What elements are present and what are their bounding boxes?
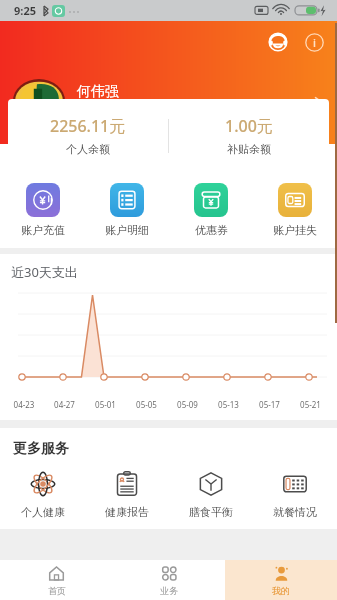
button[interactable]: 优惠券: [169, 183, 253, 237]
staticText: 17855831296: [77, 104, 153, 120]
staticText: 05-01: [85, 399, 126, 410]
button[interactable]: 客服: [265, 29, 291, 55]
staticText: 个人健康: [21, 505, 65, 519]
staticText: 05-09: [167, 399, 208, 410]
button[interactable]: 业务: [113, 560, 225, 600]
button[interactable]: 账户挂失: [253, 183, 337, 237]
button[interactable]: 账户明细: [85, 183, 169, 237]
staticText: 健康报告: [105, 505, 149, 519]
button[interactable]: 首页: [0, 560, 113, 600]
staticText: 我的: [272, 585, 290, 596]
staticText: 1.00元: [225, 115, 273, 137]
button[interactable]: 账户充值: [0, 183, 85, 237]
staticText: 个人余额: [66, 142, 110, 156]
staticText: 05-17: [249, 399, 290, 410]
staticText: 更多服务: [13, 440, 69, 458]
staticText: 2256.11元: [50, 115, 126, 137]
button[interactable]: 就餐情况: [253, 470, 337, 519]
staticText: 05-21: [290, 399, 331, 410]
staticText: 膳食平衡: [189, 505, 233, 519]
button[interactable]: 健康报告: [85, 470, 169, 519]
staticText: 账户挂失: [273, 223, 317, 237]
button[interactable]: 2256.11元: [8, 99, 168, 172]
staticText: 补贴余额: [227, 142, 271, 156]
staticText: 优惠券: [195, 223, 228, 237]
button[interactable]: 何伟强: [0, 73, 337, 129]
button[interactable]: 信息: [301, 29, 327, 55]
staticText: 何伟强: [77, 83, 119, 101]
button[interactable]: 膳食平衡: [169, 470, 253, 519]
button[interactable]: 1.00元: [169, 99, 329, 172]
staticText: 05-13: [208, 399, 249, 410]
staticText: 近30天支出: [11, 263, 78, 281]
button[interactable]: 我的: [225, 560, 337, 600]
staticText: 04-27: [44, 399, 85, 410]
staticText: i: [313, 35, 316, 50]
button[interactable]: 个人健康: [0, 470, 85, 519]
staticText: 9:25: [14, 3, 36, 18]
staticText: 就餐情况: [273, 505, 317, 519]
staticText: 业务: [160, 585, 178, 596]
staticText: 账户明细: [105, 223, 149, 237]
staticText: 05-05: [126, 399, 167, 410]
staticText: 账户充值: [21, 223, 65, 237]
staticText: 首页: [48, 585, 66, 596]
staticText: 04-23: [4, 399, 44, 410]
